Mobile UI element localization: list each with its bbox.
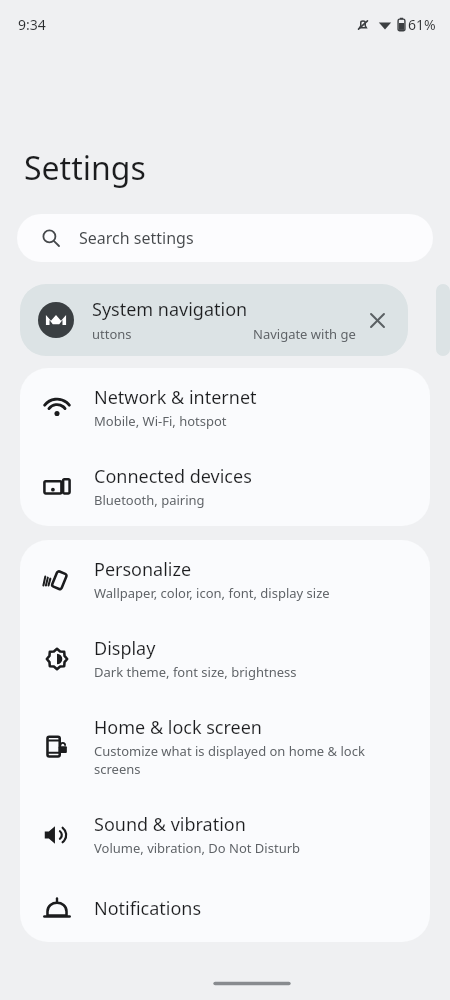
button[interactable]: Network & internet xyxy=(20,368,430,447)
staticText: Settings xyxy=(24,146,146,190)
button[interactable]: Display xyxy=(20,619,430,698)
button[interactable]: Notifications xyxy=(20,874,430,942)
staticText: Sound & vibration xyxy=(94,812,246,837)
button[interactable]: Dismiss suggestion xyxy=(358,301,396,339)
staticText: uttons xyxy=(92,325,132,343)
staticText: Connected devices xyxy=(94,464,252,489)
staticText: Bluetooth, pairing xyxy=(94,491,205,509)
button[interactable]: System navigation xyxy=(20,284,408,356)
staticText: Notifications xyxy=(94,896,202,921)
button[interactable]: Home & lock screen xyxy=(20,698,430,795)
staticText: Home & lock screen xyxy=(94,715,262,740)
button[interactable]: Connected devices xyxy=(20,447,430,526)
staticText: Wallpaper, color, icon, font, display si… xyxy=(94,584,330,602)
staticText: Search settings xyxy=(79,227,194,249)
staticText: Dark theme, font size, brightness xyxy=(94,663,297,681)
staticText: System navigation xyxy=(92,297,248,322)
staticText: 61% xyxy=(408,15,436,34)
button[interactable]: Sound & vibration xyxy=(20,795,430,874)
staticText: Display xyxy=(94,636,156,661)
staticText: Mobile, Wi-Fi, hotspot xyxy=(94,412,227,430)
button[interactable]: Personalize xyxy=(20,540,430,619)
staticText: Network & internet xyxy=(94,385,257,410)
staticText: 9:34 xyxy=(18,15,46,34)
button[interactable]: Search settings xyxy=(17,214,433,262)
staticText: Volume, vibration, Do Not Disturb xyxy=(94,839,301,857)
staticText: Navigate with ge xyxy=(253,325,356,343)
staticText: Customize what is displayed on home & lo… xyxy=(94,742,406,778)
staticText: Personalize xyxy=(94,557,192,582)
